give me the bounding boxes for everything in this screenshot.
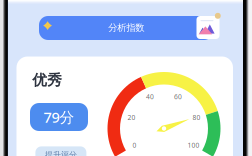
staticText: 40 — [146, 92, 154, 101]
staticText: 60 — [174, 92, 182, 101]
button[interactable]: 79分 — [0, 0, 252, 156]
staticText: 80 — [192, 113, 200, 122]
staticText: 20 — [127, 113, 135, 122]
button[interactable]: 提升评分 — [0, 0, 252, 156]
staticText: 分析指数 — [108, 22, 144, 33]
staticText: 提升评分 — [45, 150, 77, 156]
staticText: 79分 — [43, 107, 74, 127]
staticText: 0 — [132, 141, 136, 150]
button[interactable]: 分析指数 — [0, 0, 252, 156]
staticText: 优秀 — [32, 71, 62, 89]
staticText: 100 — [188, 141, 200, 150]
